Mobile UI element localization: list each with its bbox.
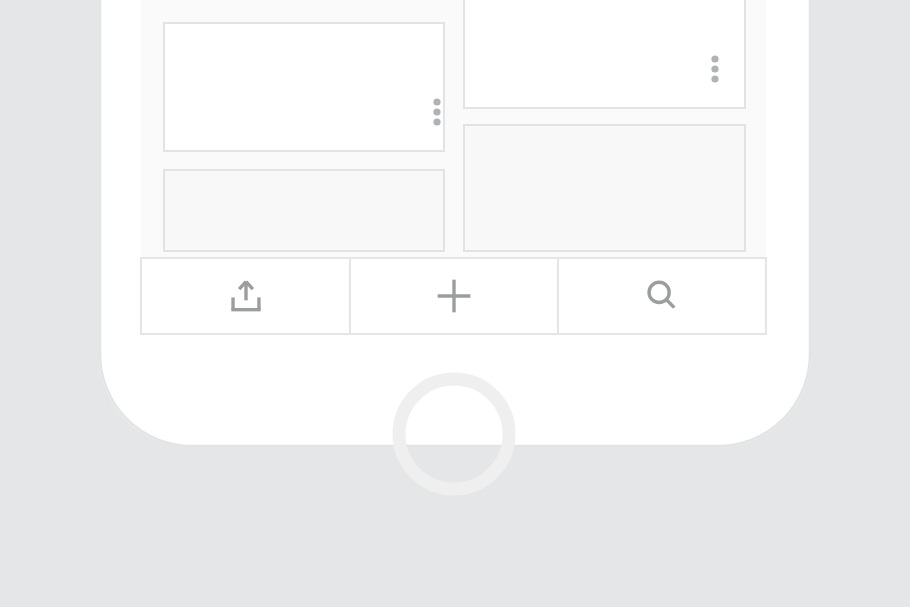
button[interactable]: Add (350, 258, 558, 334)
button[interactable] (164, 170, 444, 251)
button[interactable]: More options (423, 91, 451, 133)
button[interactable] (464, 125, 745, 251)
button[interactable]: More options (164, 23, 444, 151)
button[interactable]: Share (141, 258, 350, 334)
button[interactable]: Search (558, 258, 766, 334)
button[interactable]: More options (701, 48, 729, 90)
button[interactable]: More options (464, 0, 745, 108)
button[interactable]: Home (392, 372, 516, 496)
